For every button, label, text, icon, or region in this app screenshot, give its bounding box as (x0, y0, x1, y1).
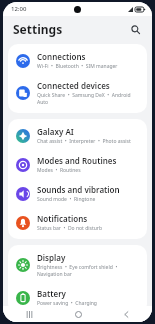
staticText: Power saving • Charging (37, 300, 97, 307)
staticText: Modes and Routines (37, 155, 117, 166)
button[interactable]: Sounds and vibration (8, 179, 147, 208)
staticText: Connected devices (37, 80, 110, 91)
staticText: Chat assist • Interpreter • Photo assist (37, 138, 131, 145)
button[interactable]: Connections (8, 46, 147, 75)
staticText: Connections (37, 51, 86, 62)
staticText: 12:00 (11, 5, 27, 13)
button[interactable]: Battery (8, 283, 147, 312)
button[interactable]: Galaxy AI (8, 121, 147, 150)
staticText: Battery (37, 288, 66, 299)
staticText: Display (37, 252, 66, 263)
staticText: Quick Share • Samsung DeX • Android Auto (37, 92, 139, 106)
staticText: Settings (13, 21, 63, 37)
staticText: Modes • Routines (37, 167, 81, 174)
staticText: Brightness • Eye comfort shield • Naviga… (37, 264, 139, 278)
button[interactable]: Recent apps (21, 306, 37, 322)
staticText: Sounds and vibration (37, 184, 120, 195)
button[interactable]: Search (126, 20, 144, 38)
button[interactable]: Home (70, 306, 86, 322)
staticText: Status bar • Do not disturb (37, 225, 102, 232)
staticText: Notifications (37, 213, 88, 224)
button[interactable]: Back (118, 306, 134, 322)
button[interactable]: Display (8, 247, 147, 283)
button[interactable]: Notifications (8, 208, 147, 237)
staticText: Galaxy AI (37, 126, 74, 137)
staticText: Sound mode • Ringtone (37, 196, 96, 203)
staticText: Wi-Fi • Bluetooth • SIM manager (37, 63, 118, 70)
button[interactable]: Modes and Routines (8, 150, 147, 179)
button[interactable]: Connected devices (8, 75, 147, 111)
